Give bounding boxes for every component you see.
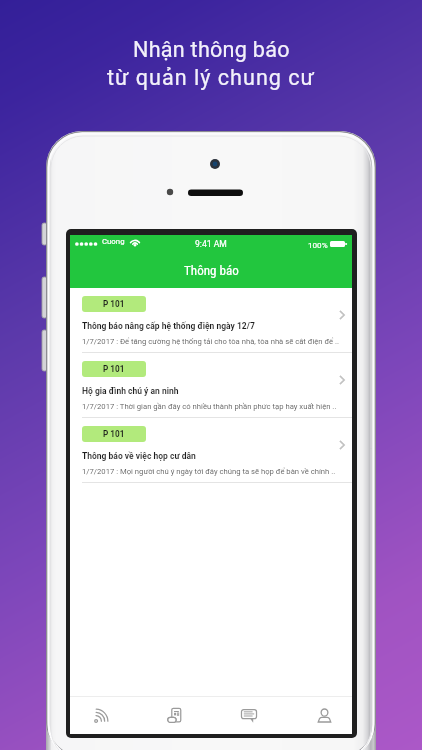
staticText: Hộ gia đình chú ý an ninh [82,386,179,396]
staticText: Thông báo về việc họp cư dân [82,451,196,461]
button[interactable]: P 101 [70,353,352,418]
staticText: 1/7/2017 : Để tăng cường hệ thống tải ch… [82,337,340,346]
staticText: Cuong [102,237,125,246]
staticText: P 101 [103,429,125,439]
button[interactable]: Profile [287,697,357,734]
staticText: 1/7/2017 : Thời gian gần đây có nhiều th… [82,402,337,411]
staticText: 100% [308,240,328,249]
staticText: Thông báo [184,263,239,278]
button[interactable]: P 101 [70,288,352,353]
button[interactable]: P 101 [70,418,352,483]
staticText: 9:41 AM [195,239,227,249]
button[interactable]: Messages [212,697,286,734]
staticText: 1/7/2017 : Mọi người chú ý ngày tới đây … [82,467,336,476]
button[interactable]: News [138,697,212,734]
staticText: từ quản lý chung cư [107,65,315,90]
button[interactable]: Notifications [66,697,138,734]
staticText: P 101 [103,299,125,309]
staticText: P 101 [103,364,125,374]
staticText: Nhận thông báo [133,37,290,62]
staticText: Thông báo nâng cấp hệ thống điện ngày 12… [82,321,255,331]
